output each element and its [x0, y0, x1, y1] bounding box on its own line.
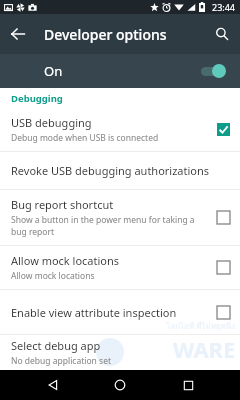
staticText: No debug application set — [11, 355, 112, 367]
staticText: Developer options — [44, 25, 167, 44]
staticText: USB debugging — [11, 115, 92, 130]
staticText: bug report — [11, 226, 55, 238]
staticText: Bug report shortcut — [11, 197, 114, 212]
staticText: โลกไอที ที่ไม่หยุดนิ่ง — [166, 320, 236, 333]
staticText: Allow mock locations — [11, 270, 95, 282]
staticText: Revoke USB debugging authorizations — [11, 163, 210, 178]
button[interactable]: Home — [105, 370, 135, 400]
button[interactable]: Search — [204, 16, 240, 52]
staticText: Debug mode when USB is connected — [11, 132, 159, 144]
button[interactable]: USB debugging — [0, 108, 240, 151]
button[interactable]: On — [0, 54, 240, 88]
staticText: Allow mock locations — [11, 253, 120, 268]
staticText: WARE — [173, 334, 236, 364]
staticText: Select debug app — [11, 338, 101, 353]
button[interactable]: Allow mock locations — [0, 246, 240, 289]
staticText: 23:44 — [212, 1, 236, 13]
button[interactable]: Bug report shortcut — [0, 190, 240, 245]
button[interactable]: Back — [38, 370, 68, 400]
button[interactable]: Recent apps — [173, 370, 203, 400]
button[interactable]: Back — [0, 16, 36, 52]
staticText: Enable view attribute inspection — [11, 305, 211, 320]
staticText: Show a button in the power menu for taki… — [11, 214, 195, 226]
button[interactable]: Select debug app — [0, 335, 240, 370]
staticText: Debugging — [11, 92, 63, 105]
button[interactable]: Enable view attribute inspection — [0, 290, 240, 334]
button[interactable]: Revoke USB debugging authorizations — [0, 152, 240, 189]
staticText: On — [44, 62, 63, 80]
